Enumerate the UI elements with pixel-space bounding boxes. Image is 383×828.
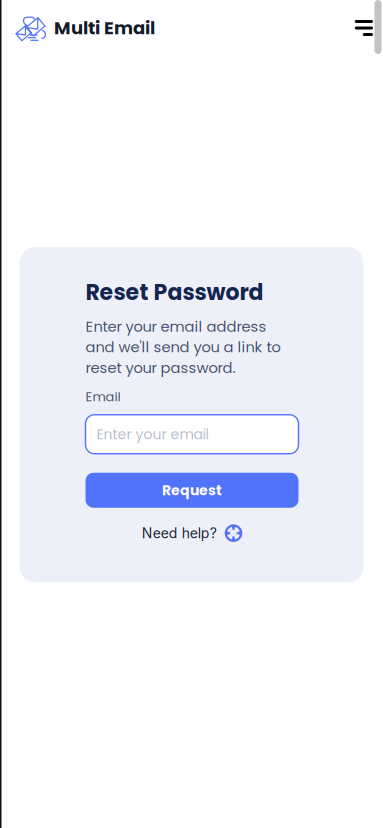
button[interactable]: Menu	[341, 8, 383, 48]
staticText: Request	[162, 480, 222, 500]
button[interactable]: Multi Email	[0, 5, 155, 50]
button[interactable]: Request	[85, 473, 298, 508]
staticText: Enter your email	[96, 424, 208, 444]
staticText: Multi Email	[54, 15, 155, 41]
staticText: Reset Password	[85, 277, 263, 308]
staticText: Need help?	[142, 525, 217, 542]
button[interactable]: Need help?	[85, 524, 298, 542]
staticText: Email	[85, 387, 120, 406]
staticText: Enter your email address and we'll send …	[85, 316, 280, 378]
